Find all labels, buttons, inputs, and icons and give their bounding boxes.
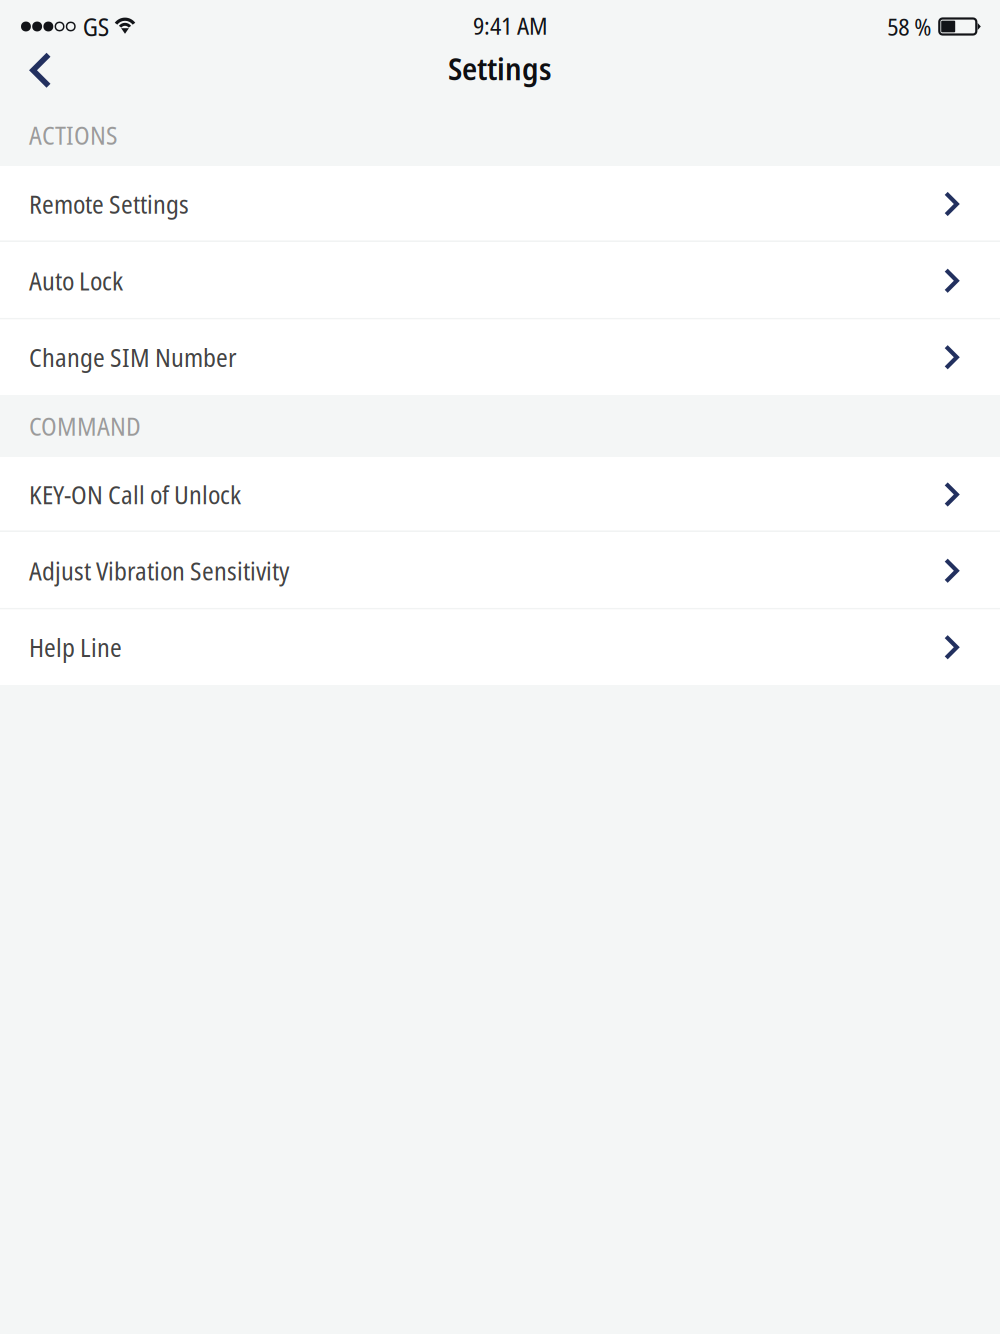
button[interactable]: Back [0, 48, 77, 104]
button[interactable]: Change SIM Number [0, 319, 1000, 395]
staticText: Adjust Vibration Sensitivity [29, 553, 289, 588]
staticText: KEY-ON Call of Unlock [29, 477, 241, 512]
staticText: ACTIONS [29, 118, 118, 152]
button[interactable]: Remote Settings [0, 166, 1000, 242]
staticText: Auto Lock [29, 263, 123, 298]
button[interactable]: Help Line [0, 609, 1000, 685]
staticText: Help Line [29, 630, 122, 664]
button[interactable]: Auto Lock [0, 242, 1000, 319]
staticText: COMMAND [29, 409, 141, 443]
staticText: Change SIM Number [29, 340, 237, 374]
staticText: GS [83, 9, 110, 44]
staticText: Remote Settings [29, 187, 189, 221]
button[interactable]: Adjust Vibration Sensitivity [0, 532, 1000, 609]
button[interactable]: KEY-ON Call of Unlock [0, 457, 1000, 532]
staticText: 9:41 AM [473, 9, 548, 42]
staticText: Settings [448, 47, 552, 89]
staticText: 58 % [887, 10, 931, 43]
